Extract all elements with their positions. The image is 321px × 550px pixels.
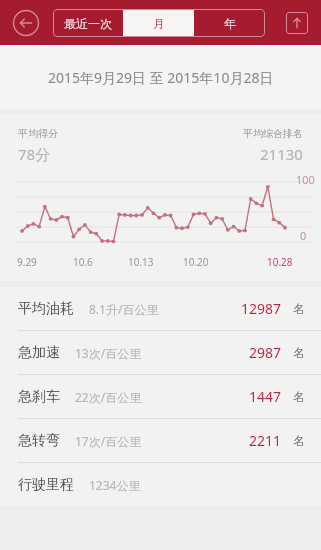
staticText: 2015年9月29日 至 2015年10月28日 [48,68,274,87]
staticText: 10.28 [267,255,293,269]
staticText: 9.29 [17,255,37,269]
staticText: 17次/百公里 [75,433,142,449]
staticText: 10.20 [183,255,209,269]
staticText: 2987 [249,343,282,362]
staticText: 名 [293,433,305,448]
staticText: 年 [224,16,236,31]
button[interactable]: 急转弯 [0,419,321,462]
staticText: 1234公里 [89,477,141,493]
staticText: 名 [293,389,305,404]
staticText: 100 [296,172,315,187]
staticText: 12987 [241,299,282,318]
staticText: 8.1升/百公里 [89,301,159,317]
staticText: 平均油耗 [18,300,74,318]
button[interactable]: 行驶里程 [0,463,321,506]
staticText: 平均得分 [18,127,58,140]
staticText: 平均综合排名 [243,127,303,140]
button[interactable]: 急加速 [0,331,321,374]
staticText: 10.6 [73,255,93,269]
staticText: 名 [293,301,305,316]
staticText: 21130 [260,144,303,164]
button[interactable]: 年 [194,9,265,37]
staticText: 13次/百公里 [75,345,142,361]
staticText: 行驶里程 [18,476,74,494]
staticText: 急加速 [18,344,60,362]
staticText: 2211 [249,431,282,450]
button[interactable]: Share [286,12,308,34]
staticText: 10.13 [128,255,154,269]
button[interactable]: 急刹车 [0,375,321,418]
staticText: 名 [293,345,305,360]
staticText: 急转弯 [18,432,60,450]
button[interactable]: 平均油耗 [0,287,321,330]
staticText: 0 [300,228,307,243]
staticText: 78分 [18,144,51,164]
staticText: 急刹车 [18,388,60,406]
staticText: 月 [153,16,165,31]
staticText: 最近一次 [64,16,112,31]
button[interactable]: 最近一次 [53,9,123,37]
button[interactable]: Back [12,9,40,37]
button[interactable]: 月 [123,9,194,37]
staticText: 1447 [249,387,282,406]
staticText: 22次/百公里 [75,389,142,405]
